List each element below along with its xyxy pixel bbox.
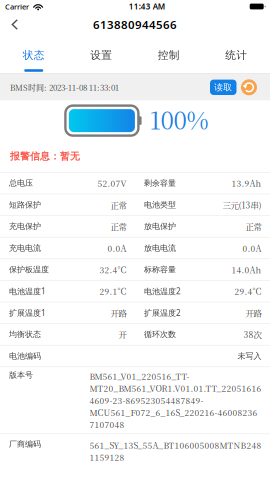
staticText: 100%: [150, 102, 209, 136]
staticText: 正常: [110, 220, 126, 232]
staticText: 开路: [110, 307, 126, 319]
staticText: 扩展温度1: [9, 307, 46, 318]
staticText: 正常: [110, 199, 126, 211]
staticText: 0.0A: [242, 242, 261, 254]
staticText: 未写入: [237, 351, 261, 361]
staticText: 13.9Ah: [231, 177, 261, 189]
staticText: 设置: [90, 48, 112, 62]
staticText: 14.0Ah: [231, 264, 261, 276]
button[interactable]: 设置: [67, 36, 135, 73]
staticText: 11:43 AM: [129, 1, 165, 12]
staticText: 电池温度1: [9, 286, 46, 297]
staticText: 总电压: [9, 178, 33, 188]
staticText: BMS时间: 2023-11-08 11:33:01: [10, 82, 119, 93]
staticText: 扩展温度2: [144, 307, 181, 318]
staticText: 版本号: [9, 370, 33, 380]
staticText: 29.1°C: [99, 285, 126, 297]
staticText: 三元(13串): [222, 199, 261, 211]
staticText: 循环次数: [144, 329, 176, 339]
staticText: 读取: [214, 82, 232, 93]
staticText: 控制: [158, 48, 180, 62]
staticText: 0.0A: [107, 242, 126, 254]
staticText: 充电保护: [9, 221, 41, 231]
staticText: Carrier: [5, 1, 29, 12]
staticText: 统计: [225, 48, 247, 62]
button[interactable]: 状态: [0, 36, 67, 73]
button[interactable]: Refresh: [236, 79, 257, 95]
button[interactable]: Back: [0, 15, 33, 34]
staticText: 剩余容量: [144, 178, 176, 188]
staticText: 厂商编码: [9, 439, 41, 449]
staticText: 32.4°C: [99, 264, 126, 276]
button[interactable]: 统计: [202, 36, 270, 73]
button[interactable]: 控制: [135, 36, 202, 73]
staticText: 开路: [245, 307, 261, 319]
staticText: 电池类型: [144, 200, 176, 210]
staticText: 状态: [23, 48, 45, 62]
staticText: 标称容量: [144, 265, 176, 275]
staticText: 放电电流: [144, 243, 176, 253]
staticText: 613880944566: [93, 17, 177, 32]
staticText: 短路保护: [9, 200, 41, 210]
button[interactable]: 读取: [210, 80, 236, 95]
staticText: 正常: [245, 220, 261, 232]
staticText: 报警信息：暂无: [10, 150, 80, 162]
staticText: 电池温度2: [144, 286, 181, 297]
staticText: 38次: [243, 328, 261, 340]
staticText: 均衡状态: [9, 329, 41, 339]
staticText: 充电电流: [9, 243, 41, 253]
staticText: 561_SY_13S_55A_BT106005008MTNB2481159128: [89, 439, 261, 463]
staticText: 放电保护: [144, 221, 176, 231]
staticText: 保护板温度: [9, 265, 49, 275]
staticText: 电池编码: [9, 351, 41, 361]
staticText: 开: [118, 328, 126, 340]
staticText: 52.07V: [97, 177, 126, 189]
staticText: 29.4°C: [234, 285, 261, 297]
staticText: BM561_V01_220516_TT-MT20_BM561_VOR1.V01.…: [89, 370, 261, 430]
